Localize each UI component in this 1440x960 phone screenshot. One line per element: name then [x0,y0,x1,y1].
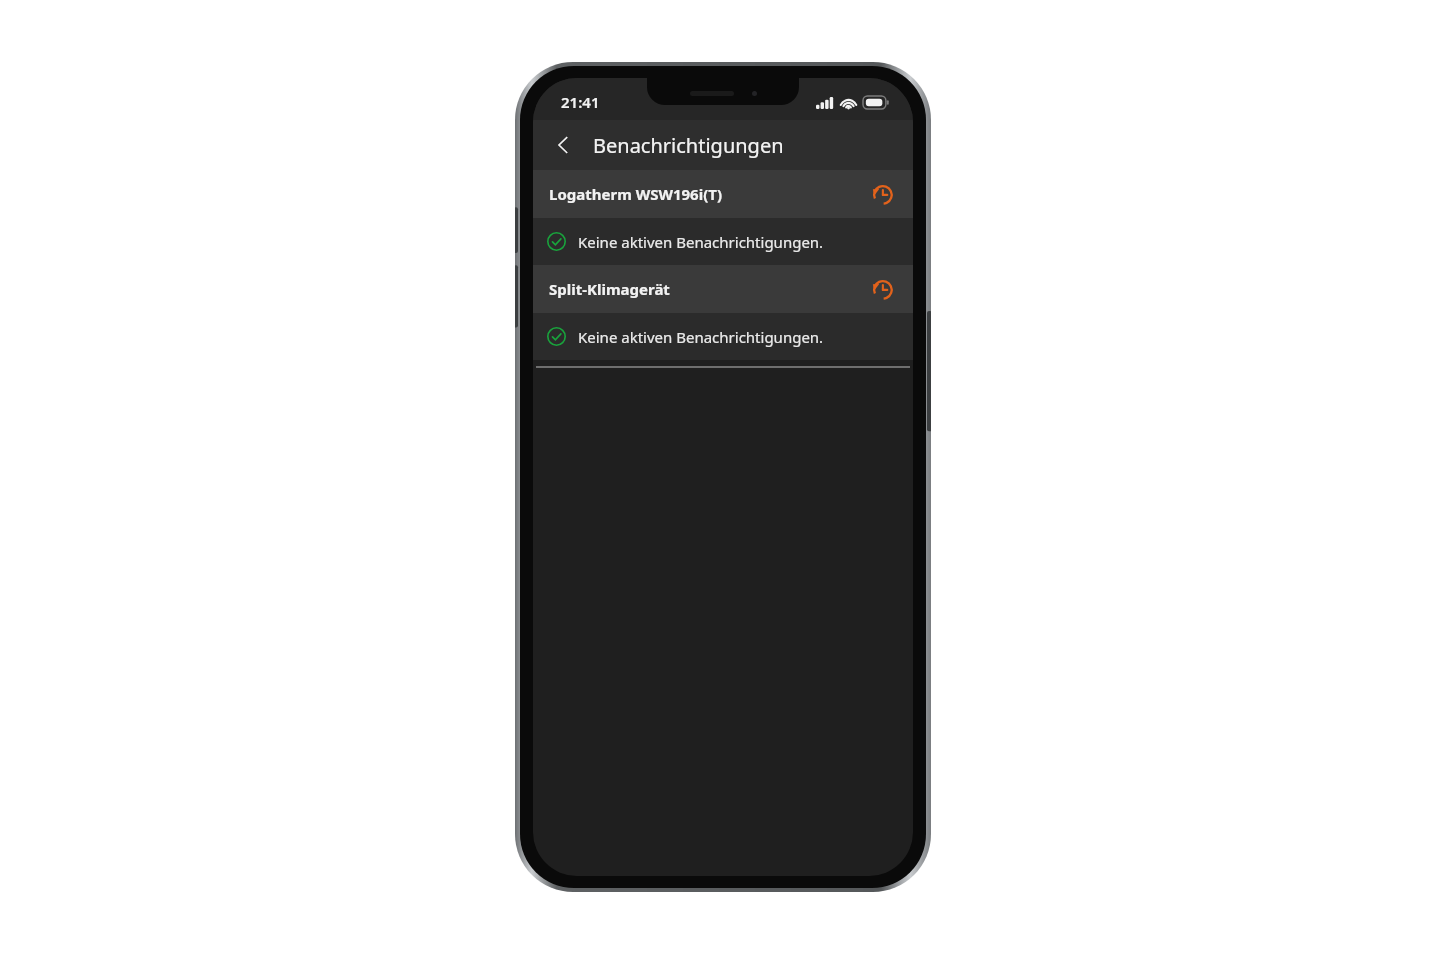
button[interactable]: Logatherm WSW196i(T) [533,170,913,218]
button[interactable]: Zurück [541,123,585,167]
button[interactable]: Verlauf [865,177,899,211]
staticText: Benachrichtigungen [593,132,784,159]
staticText: Logatherm WSW196i(T) [549,184,865,204]
staticText: Split-Klimagerät [549,279,865,299]
button[interactable]: Keine aktiven Benachrichtigungen. [533,218,913,265]
staticText: Keine aktiven Benachrichtigungen. [578,327,824,347]
button[interactable]: Keine aktiven Benachrichtigungen. [533,313,913,360]
staticText: Keine aktiven Benachrichtigungen. [578,232,824,252]
button[interactable]: Split-Klimagerät [533,265,913,313]
staticText: 21:41 [561,92,600,112]
button[interactable]: Verlauf [865,272,899,306]
